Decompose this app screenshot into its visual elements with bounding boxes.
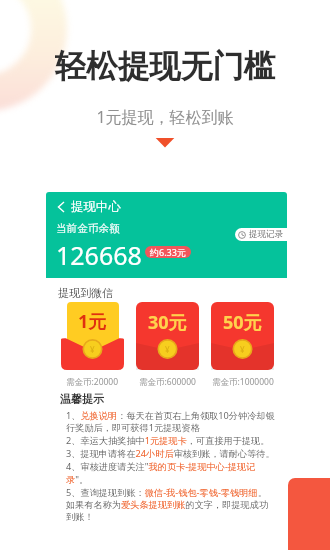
staticText: 需金币:1000000 bbox=[212, 376, 274, 388]
staticText: ¥ bbox=[165, 344, 170, 355]
other: Back bbox=[57, 201, 66, 213]
staticText: 30元 bbox=[148, 310, 187, 335]
staticText: 轻松提现无门槛 bbox=[0, 47, 330, 87]
staticText: 当前金币余额 bbox=[56, 222, 120, 235]
staticText: 需金币:20000 bbox=[66, 376, 119, 388]
staticText: 提现记录 bbox=[249, 229, 283, 240]
staticText: 到账！ bbox=[66, 511, 94, 523]
staticText: 温馨提示 bbox=[60, 392, 104, 406]
button[interactable]: ¥ bbox=[61, 302, 124, 370]
staticText: 约6.33元 bbox=[150, 246, 186, 258]
staticText: 2、幸运大抽奖抽中1元提现卡，可直接用于提现。 bbox=[66, 434, 270, 447]
button[interactable]: 提现记录 bbox=[235, 228, 287, 241]
button[interactable]: ¥ bbox=[211, 302, 274, 370]
staticText: 5、查询提现到账：微信-我-钱包-零钱-零钱明细。 bbox=[66, 486, 267, 499]
button[interactable]: Back bbox=[57, 199, 121, 215]
staticText: 4、审核进度请关注"我的页卡-提现中心-提现记 bbox=[66, 460, 256, 473]
staticText: 1、兑换说明：每天在首页右上角领取10分钟冷却银 bbox=[66, 409, 275, 422]
staticText: 提现到微信 bbox=[58, 286, 113, 300]
staticText: 126668 bbox=[56, 238, 142, 272]
staticText: 需金币:600000 bbox=[139, 376, 196, 388]
staticText: ¥ bbox=[240, 344, 245, 355]
staticText: 1元 bbox=[78, 309, 107, 334]
staticText: 行奖励后，即可获得1元提现资格 bbox=[66, 421, 200, 434]
staticText: 录"。 bbox=[66, 473, 89, 486]
staticText: ¥ bbox=[90, 344, 95, 355]
staticText: 提现中心 bbox=[71, 199, 121, 215]
staticText: 3、提现申请将在24小时后审核到账，请耐心等待。 bbox=[66, 447, 275, 460]
button[interactable]: ¥ bbox=[136, 302, 199, 370]
staticText: 1元提现，轻松到账 bbox=[0, 106, 330, 128]
staticText: 如果有名称为爱头条提现到账的文字，即提现成功 bbox=[66, 499, 269, 511]
staticText: 50元 bbox=[223, 310, 262, 335]
